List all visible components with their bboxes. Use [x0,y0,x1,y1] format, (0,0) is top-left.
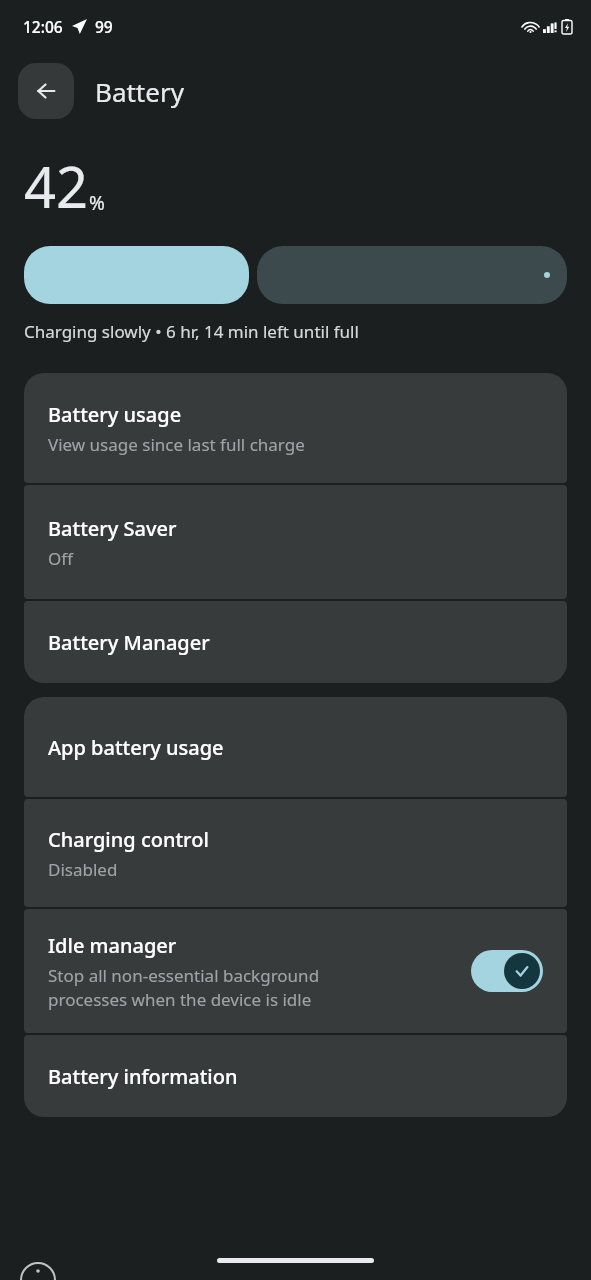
button[interactable]: Battery Saver [24,485,567,599]
staticText: Battery [95,74,184,109]
staticText: 12:06 [23,16,63,37]
button[interactable]: Idle manager toggle [471,950,543,992]
staticText: Disabled [48,858,118,881]
staticText: Battery Saver [48,515,177,542]
button[interactable]: Back [18,63,74,119]
other: Info [20,1260,56,1280]
staticText: Battery Manager [48,629,210,656]
button[interactable]: Battery Manager [24,601,567,683]
staticText: 42 [24,148,89,224]
button[interactable]: Charging control [24,799,567,907]
staticText: App battery usage [48,734,224,761]
button[interactable]: Battery information [24,1035,567,1117]
button[interactable]: App battery usage [24,697,567,797]
button[interactable]: Battery usage [24,373,567,483]
staticText: Off [48,547,73,570]
staticText: Idle manager [48,932,177,959]
button[interactable]: Idle manager [24,909,567,1033]
staticText: 99 [95,16,113,37]
staticText: % [89,190,105,216]
staticText: Battery usage [48,401,182,428]
staticText: Stop all non-essential background proces… [48,964,320,1011]
staticText: Charging control [48,826,209,853]
staticText: Charging slowly • 6 hr, 14 min left unti… [24,320,359,343]
staticText: Battery information [48,1063,238,1090]
staticText: View usage since last full charge [48,433,305,456]
